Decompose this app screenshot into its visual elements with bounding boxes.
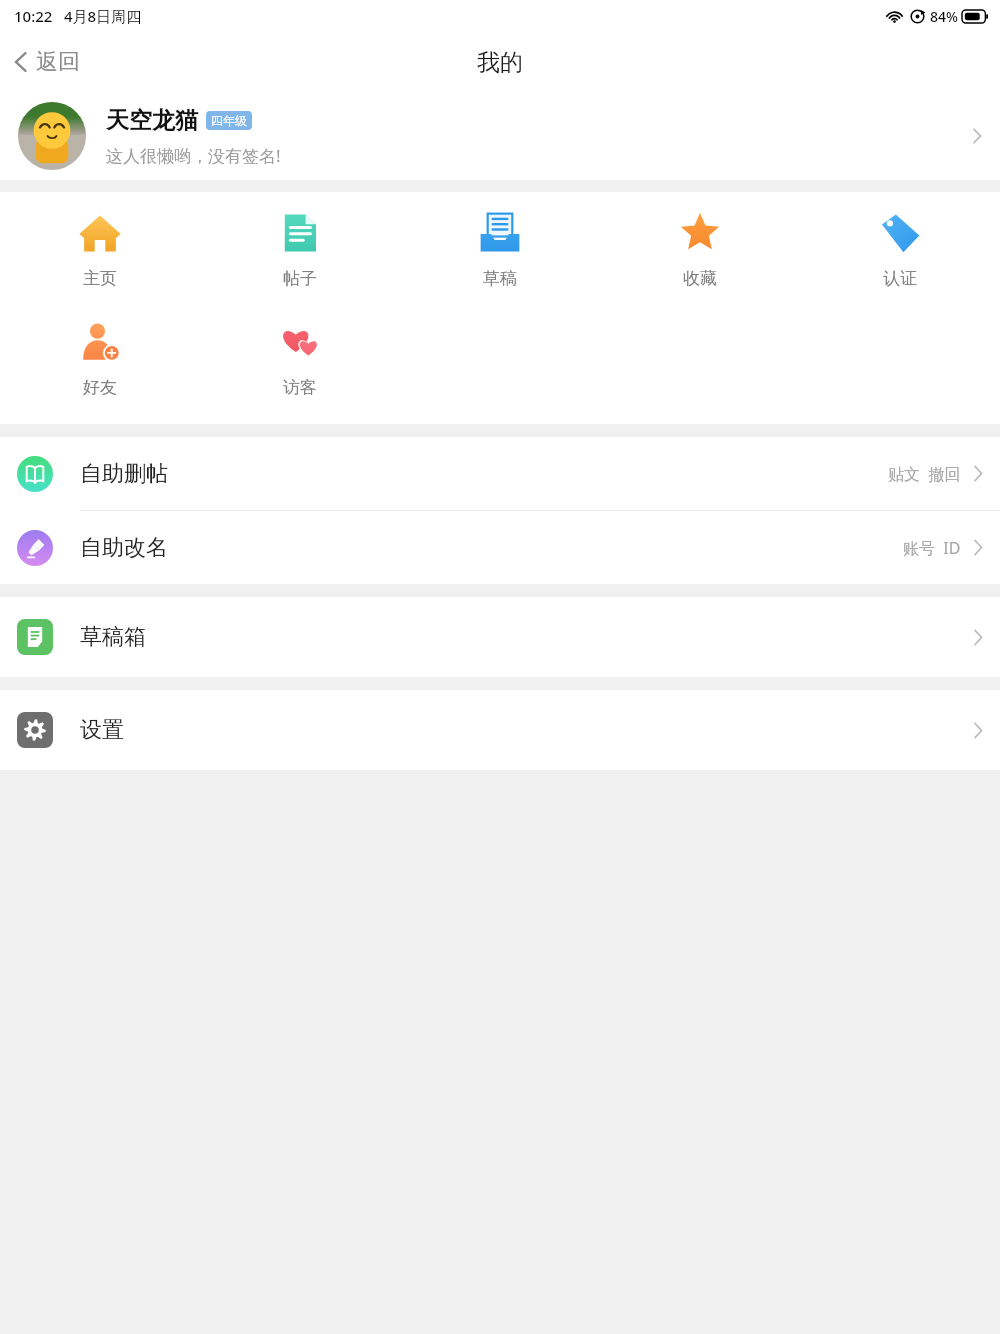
staticText: 好友 — [83, 377, 117, 398]
staticText: 天空龙猫 — [106, 106, 198, 135]
staticText: 84% — [930, 7, 958, 26]
button[interactable]: 设置 — [0, 690, 1000, 770]
button[interactable]: 返回 — [0, 40, 96, 84]
staticText: 访客 — [283, 377, 317, 398]
staticText: 10:22 — [14, 6, 53, 26]
staticText: 我的 — [477, 48, 523, 77]
staticText: 认证 — [883, 268, 917, 289]
staticText: 自助改名 — [80, 534, 168, 562]
button[interactable]: 自助删帖 — [0, 437, 1000, 511]
staticText: 贴文 撤回 — [888, 463, 961, 485]
button[interactable]: 认证 — [800, 206, 1000, 293]
button[interactable]: 帖子 — [200, 206, 400, 293]
staticText: 4月8日周四 — [64, 6, 142, 26]
staticText: 收藏 — [683, 268, 717, 289]
staticText: 主页 — [83, 268, 117, 289]
staticText: 帖子 — [283, 268, 317, 289]
button[interactable]: 自助改名 — [0, 511, 1000, 584]
button[interactable]: 访客 — [200, 315, 400, 402]
staticText: 草稿箱 — [80, 623, 146, 651]
staticText: 返回 — [36, 48, 80, 76]
staticText: 账号 ID — [903, 537, 961, 559]
staticText: 自助删帖 — [80, 460, 168, 488]
button[interactable]: 草稿 — [400, 206, 600, 293]
button[interactable]: 主页 — [0, 206, 200, 293]
button[interactable]: 好友 — [0, 315, 200, 402]
button[interactable]: 收藏 — [600, 206, 800, 293]
button[interactable]: 天空龙猫 — [0, 92, 1000, 180]
staticText: 草稿 — [483, 268, 517, 289]
staticText: 设置 — [80, 716, 124, 744]
button[interactable]: 草稿箱 — [0, 597, 1000, 677]
staticText: 四年级 — [211, 113, 247, 128]
staticText: 这人很懒哟，没有签名! — [106, 144, 281, 167]
